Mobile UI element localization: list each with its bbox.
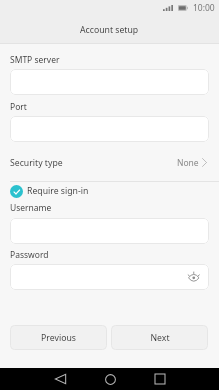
button[interactable]: Require sign-in (0, 182, 219, 200)
button[interactable]: Back (41, 368, 79, 390)
button[interactable] (10, 116, 209, 142)
staticText: SMTP server (10, 54, 60, 66)
staticText: Next (150, 332, 170, 344)
button[interactable] (10, 69, 209, 95)
button[interactable]: Show password (10, 264, 209, 290)
staticText: 10:00 (193, 2, 215, 14)
button[interactable]: Next (111, 325, 208, 350)
button[interactable]: Recents (141, 368, 179, 390)
staticText: Security type (10, 157, 63, 169)
staticText: Account setup (80, 24, 139, 36)
staticText: None (177, 157, 199, 169)
staticText: Require sign-in (27, 185, 89, 197)
button[interactable]: Security type (0, 142, 219, 181)
button[interactable]: Show password (186, 269, 202, 285)
staticText: Previous (41, 332, 76, 344)
button[interactable]: Previous (10, 325, 107, 350)
staticText: Port (10, 101, 27, 113)
button[interactable]: Home (91, 368, 129, 390)
button[interactable] (10, 218, 209, 244)
staticText: Username (10, 202, 52, 214)
staticText: Password (10, 249, 49, 261)
